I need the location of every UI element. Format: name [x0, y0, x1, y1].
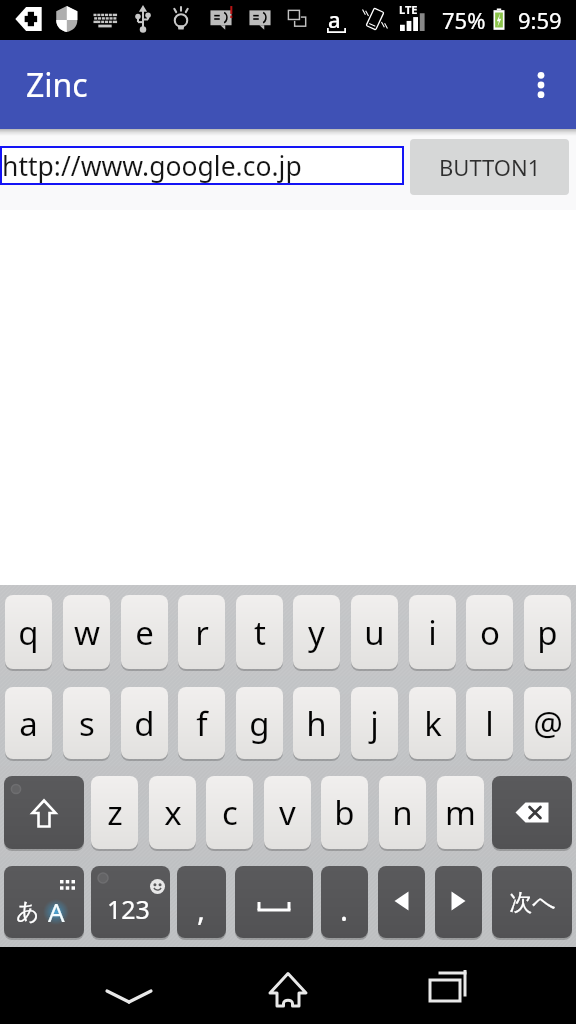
button[interactable]: Backspace [492, 776, 572, 849]
button[interactable]: m [437, 776, 484, 849]
button[interactable]: x [149, 776, 196, 849]
staticText: 次へ [509, 888, 556, 917]
button[interactable]: o [466, 595, 513, 669]
button[interactable]: r [178, 595, 225, 669]
button[interactable]: b [321, 776, 368, 849]
button[interactable]: w [63, 595, 110, 669]
button[interactable]: i [409, 595, 456, 669]
staticText: t [254, 610, 266, 655]
staticText: , [197, 889, 206, 930]
button[interactable]: a [5, 687, 52, 759]
button[interactable]: Space [235, 866, 313, 938]
button[interactable]: . [321, 866, 368, 938]
staticText: l [485, 701, 494, 746]
staticText: b [334, 790, 355, 835]
button[interactable]: Home [252, 950, 324, 1022]
staticText: i [428, 610, 437, 655]
button[interactable]: j [351, 687, 398, 759]
staticText: m [445, 790, 476, 835]
staticText: w [74, 610, 100, 655]
staticText: k [424, 701, 442, 746]
staticText: s [79, 701, 95, 746]
button[interactable]: Recent apps [412, 950, 484, 1022]
button[interactable]: @ [524, 687, 571, 759]
button[interactable]: q [5, 595, 52, 669]
button[interactable]: n [379, 776, 426, 849]
button[interactable]: l [466, 687, 513, 759]
button[interactable]: t [236, 595, 283, 669]
staticText: LTE [399, 2, 418, 17]
staticText: あ [16, 897, 40, 926]
button[interactable]: u [351, 595, 398, 669]
staticText: n [392, 790, 413, 835]
staticText: y [308, 610, 325, 655]
staticText: 9:59 [518, 5, 562, 35]
staticText: v [279, 790, 296, 835]
staticText: z [107, 790, 123, 835]
staticText: j [370, 701, 379, 746]
button[interactable]: Cursor right [435, 866, 482, 938]
button[interactable]: Switch input method [4, 866, 84, 938]
staticText: http://www.google.co.jp [2, 148, 302, 184]
staticText: r [195, 610, 209, 655]
staticText: A [48, 894, 65, 929]
staticText: . [340, 889, 349, 930]
staticText: e [135, 610, 154, 655]
button[interactable]: s [63, 687, 110, 759]
button[interactable]: c [206, 776, 253, 849]
button[interactable]: Shift [4, 776, 84, 849]
staticText: x [164, 790, 182, 835]
button[interactable]: h [293, 687, 340, 759]
button[interactable]: d [121, 687, 168, 759]
button[interactable]: f [178, 687, 225, 759]
staticText: q [18, 610, 39, 655]
staticText: h [306, 701, 327, 746]
staticText: c [222, 790, 238, 835]
staticText: o [480, 610, 500, 655]
button[interactable]: Back [92, 950, 164, 1022]
staticText: 75% [442, 5, 486, 35]
staticText: 123 [107, 892, 150, 926]
staticText: @ [533, 701, 563, 746]
button[interactable]: v [264, 776, 311, 849]
staticText: BUTTON1 [439, 152, 541, 182]
button[interactable]: y [293, 595, 340, 669]
button[interactable]: More options [519, 63, 563, 107]
button[interactable]: , [177, 866, 226, 938]
staticText: g [249, 701, 270, 746]
staticText: a [19, 701, 38, 746]
button[interactable]: BUTTON1 [410, 139, 569, 195]
staticText: p [537, 610, 558, 655]
button[interactable]: k [409, 687, 456, 759]
staticText: d [134, 701, 155, 746]
button[interactable]: Cursor left [378, 866, 425, 938]
staticText: Zinc [26, 63, 88, 107]
staticText: f [196, 701, 208, 746]
button[interactable]: g [236, 687, 283, 759]
button[interactable]: 次へ [492, 866, 572, 938]
button[interactable]: Numbers [91, 866, 170, 938]
staticText: a [328, 4, 341, 34]
button[interactable]: z [91, 776, 138, 849]
button[interactable]: p [524, 595, 571, 669]
staticText: u [364, 610, 385, 655]
button[interactable]: e [121, 595, 168, 669]
button[interactable]: http://www.google.co.jp [0, 146, 404, 185]
